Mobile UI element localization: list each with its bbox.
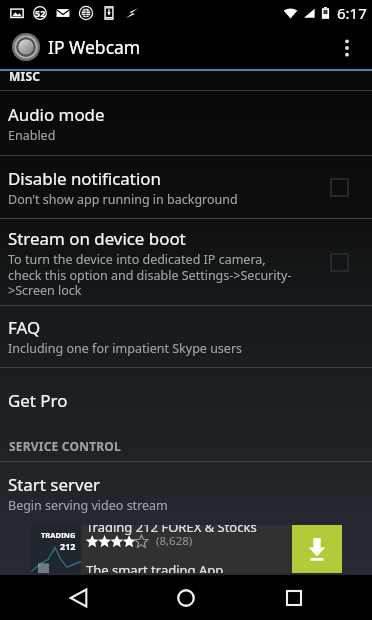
staticText: Stream on device boot: [8, 227, 186, 250]
button[interactable]: Stream on device boot: [0, 219, 372, 305]
staticText: Get Pro: [8, 389, 68, 412]
staticText: (8,628): [156, 533, 193, 549]
button[interactable]: FAQ: [0, 306, 372, 367]
button[interactable]: Disable notification: [0, 156, 372, 218]
staticText: Including one for impatient Skype users: [8, 340, 243, 357]
button[interactable]: Recents: [240, 575, 348, 620]
button[interactable]: Start server: [0, 462, 372, 524]
staticText: Trading 212 FOREX & Stocks: [86, 525, 257, 536]
button[interactable]: Back: [24, 575, 132, 620]
staticText: To turn the device into dedicated IP cam…: [8, 251, 292, 298]
staticText: Audio mode: [8, 103, 105, 126]
button[interactable]: TRADING: [31, 525, 342, 573]
staticText: Don't show app running in background: [8, 191, 238, 208]
staticText: Enabled: [8, 127, 56, 144]
staticText: SERVICE CONTROL: [9, 438, 121, 454]
staticText: MISC: [9, 68, 41, 84]
staticText: 52: [35, 7, 46, 19]
button[interactable]: Home: [132, 575, 240, 620]
button[interactable]: Install: [292, 525, 342, 573]
staticText: Start server: [8, 473, 100, 496]
staticText: Disable notification: [8, 167, 161, 190]
button[interactable]: More options: [325, 26, 368, 69]
staticText: FAQ: [8, 316, 41, 339]
staticText: TRADING: [41, 530, 76, 540]
staticText: The smart trading App: [86, 561, 224, 573]
button[interactable]: Get Pro: [0, 368, 372, 433]
staticText: 6:17: [337, 3, 367, 23]
staticText: Begin serving video stream: [8, 497, 168, 514]
staticText: IP Webcam: [48, 35, 141, 59]
staticText: 212: [60, 540, 76, 552]
button[interactable]: Audio mode: [0, 91, 372, 155]
